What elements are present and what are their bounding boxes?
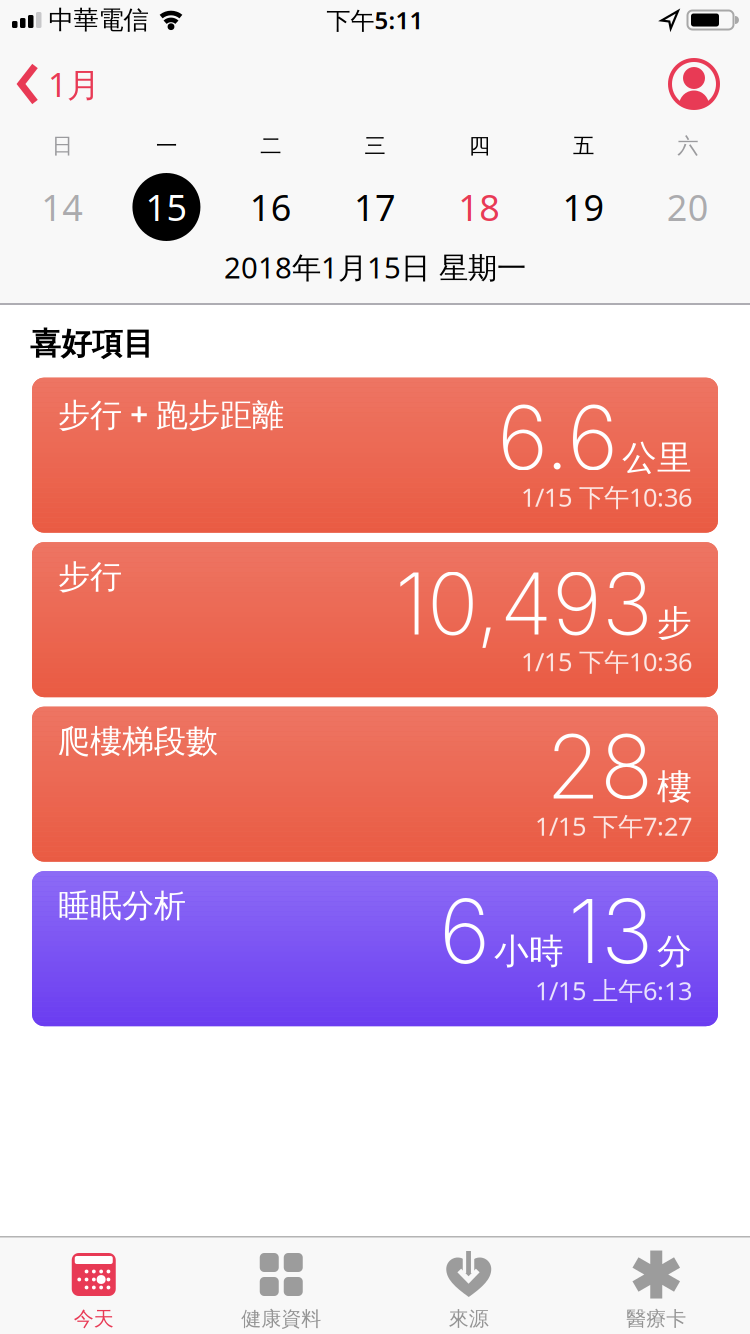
button[interactable]: 醫療卡: [562, 1249, 750, 1331]
staticText: 六: [677, 133, 698, 159]
button[interactable]: 來源: [375, 1249, 562, 1331]
button[interactable]: 18: [427, 168, 531, 246]
staticText: 15: [145, 183, 187, 231]
staticText: 二: [260, 133, 281, 159]
staticText: 17: [354, 183, 396, 231]
button[interactable]: 步行 + 跑步距離: [32, 378, 718, 533]
staticText: 20: [667, 183, 709, 231]
staticText: 分: [657, 930, 692, 973]
button[interactable]: 19: [531, 168, 636, 246]
staticText: 13: [568, 878, 653, 984]
staticText: 10,493: [395, 552, 653, 655]
staticText: 睡眠分析: [58, 886, 186, 925]
staticText: 小時: [494, 930, 564, 973]
button[interactable]: 步行: [32, 542, 718, 697]
button[interactable]: 健康資料: [187, 1249, 375, 1331]
staticText: 喜好項目: [30, 325, 154, 363]
staticText: 1/15 下午10:36: [521, 480, 692, 514]
button[interactable]: 今天: [0, 1249, 187, 1331]
staticText: 下午5:11: [326, 4, 423, 36]
staticText: 中華電信: [48, 4, 148, 35]
staticText: 四: [469, 133, 490, 159]
staticText: 1月: [48, 62, 100, 106]
staticText: 14: [41, 183, 83, 231]
button[interactable]: 16: [219, 168, 323, 246]
staticText: 醫療卡: [626, 1306, 686, 1331]
staticText: 1/15 上午6:13: [535, 973, 692, 1007]
staticText: 日: [52, 133, 73, 159]
staticText: 來源: [449, 1306, 489, 1331]
staticText: 6: [439, 878, 490, 984]
button[interactable]: 1月: [0, 62, 100, 106]
staticText: 步: [657, 602, 692, 644]
staticText: 1/15 下午7:27: [535, 809, 692, 843]
button[interactable]: 爬樓梯段數: [32, 707, 718, 862]
staticText: 28: [546, 713, 653, 820]
staticText: 16: [250, 183, 292, 231]
staticText: 2018年1月15日 星期一: [224, 247, 526, 286]
staticText: 三: [364, 133, 385, 159]
staticText: 公里: [622, 437, 692, 479]
button[interactable]: 15: [114, 168, 219, 246]
staticText: 19: [563, 183, 605, 231]
staticText: 步行 + 跑步距離: [58, 393, 284, 435]
staticText: 1/15 下午10:36: [521, 644, 692, 678]
staticText: 一: [156, 133, 177, 159]
button[interactable]: 睡眠分析: [32, 871, 718, 1026]
button[interactable]: 14: [10, 168, 114, 246]
staticText: 五: [573, 133, 594, 159]
staticText: 健康資料: [241, 1306, 321, 1331]
button[interactable]: 個人檔案: [668, 58, 750, 110]
staticText: 今天: [74, 1306, 114, 1331]
staticText: 18: [458, 183, 500, 231]
staticText: 爬樓梯段數: [58, 722, 218, 761]
staticText: 樓: [657, 766, 692, 808]
staticText: 6.6: [497, 384, 618, 491]
staticText: 步行: [58, 557, 122, 596]
button[interactable]: 20: [636, 168, 740, 246]
button[interactable]: 17: [323, 168, 427, 246]
